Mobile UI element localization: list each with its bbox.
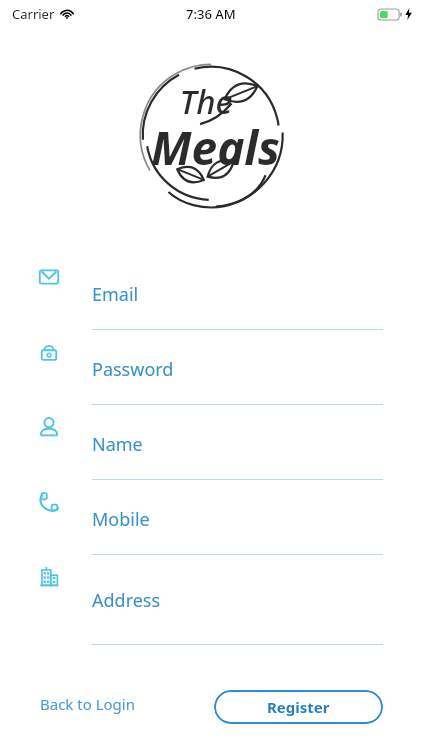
staticText: Address xyxy=(92,588,161,613)
staticText: Name xyxy=(92,432,143,457)
staticText: Email xyxy=(92,282,139,307)
other: Address xyxy=(38,566,60,588)
other: Password xyxy=(38,341,60,363)
staticText: Back to Login xyxy=(40,694,135,714)
staticText: Mobile xyxy=(92,507,150,532)
staticText: Register xyxy=(267,697,330,717)
staticText: 7:36 AM xyxy=(186,5,236,23)
other: Mobile xyxy=(38,491,60,513)
button[interactable]: Address xyxy=(0,562,422,652)
staticText: Password xyxy=(92,357,174,382)
other: Name xyxy=(38,416,60,438)
button[interactable]: Email xyxy=(0,262,422,337)
other: Email xyxy=(38,266,60,288)
button[interactable]: Password xyxy=(0,337,422,412)
staticText: Carrier xyxy=(12,5,55,23)
staticText: Meals xyxy=(151,116,280,179)
button[interactable]: Back to Login xyxy=(34,688,141,720)
button[interactable]: Mobile xyxy=(0,487,422,562)
staticText: The xyxy=(179,79,233,124)
button[interactable]: Name xyxy=(0,412,422,487)
button[interactable]: Register xyxy=(214,690,383,724)
